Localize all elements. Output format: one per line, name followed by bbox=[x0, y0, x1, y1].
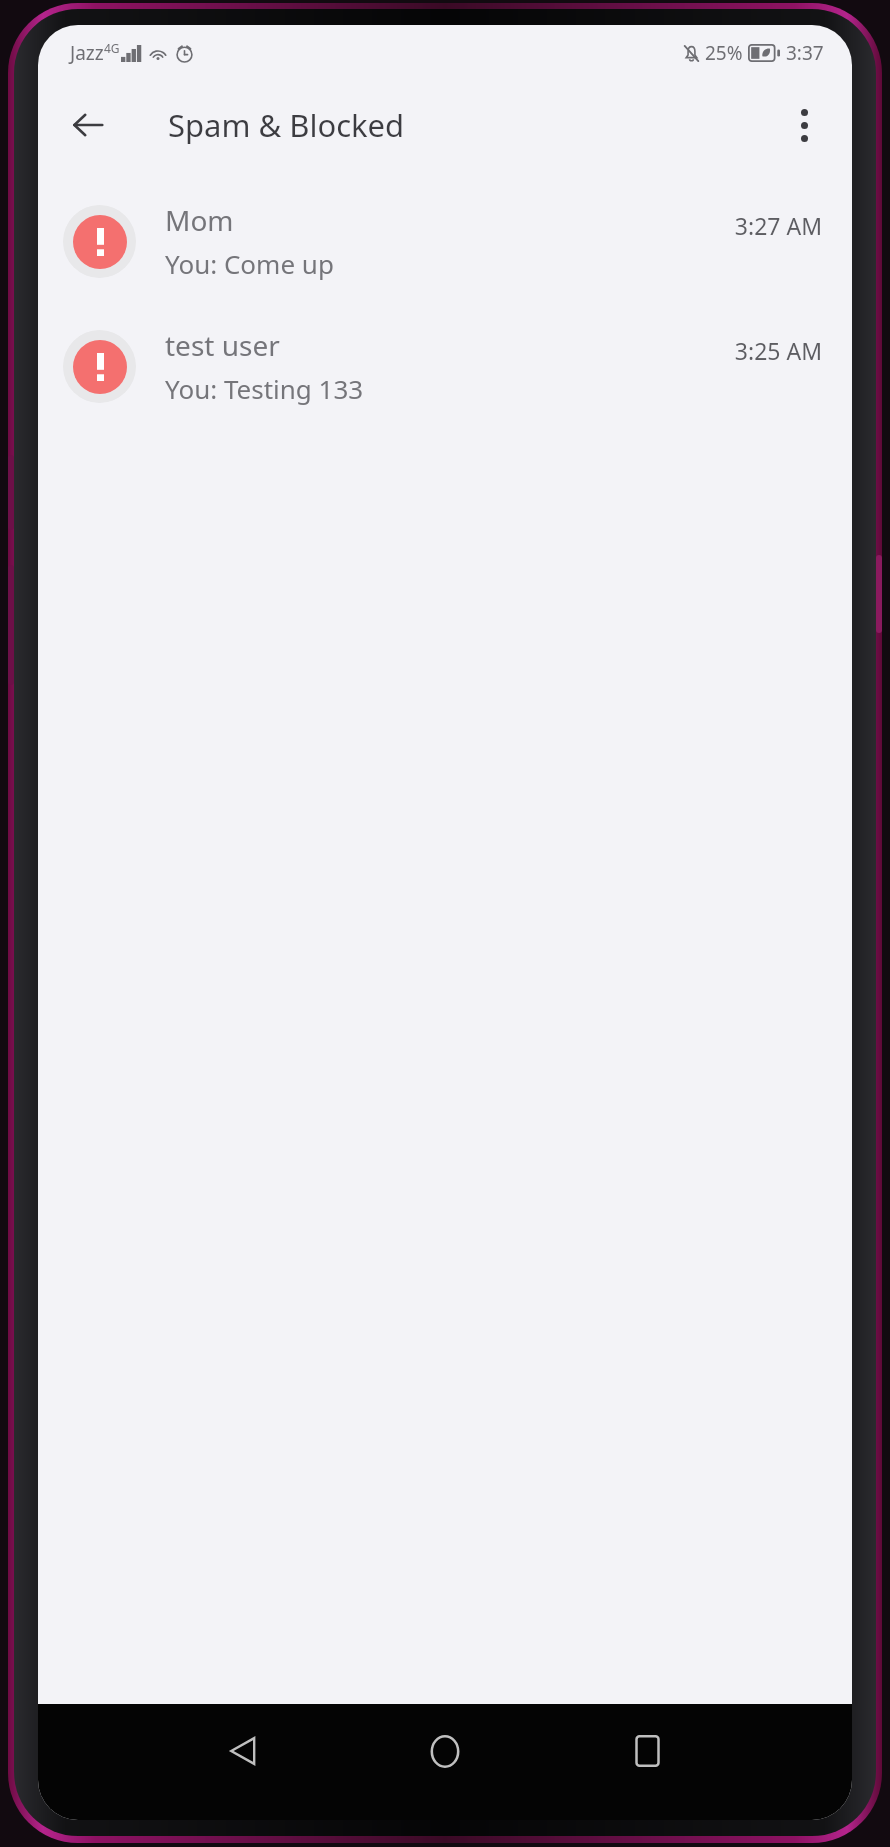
staticText: Mom bbox=[165, 201, 234, 239]
button[interactable]: Mom bbox=[38, 201, 852, 281]
staticText: You: Come up bbox=[165, 246, 334, 281]
staticText: 3:37 bbox=[786, 40, 824, 66]
staticText: 25% bbox=[705, 40, 743, 66]
staticText: Spam & Blocked bbox=[168, 104, 405, 146]
button[interactable]: Back bbox=[212, 1720, 274, 1782]
button[interactable]: test user bbox=[38, 326, 852, 406]
staticText: 3:25 AM bbox=[734, 335, 822, 366]
button[interactable]: More options bbox=[776, 97, 832, 153]
staticText: 4G bbox=[104, 40, 120, 56]
staticText: You: Testing 133 bbox=[165, 371, 364, 406]
button[interactable]: Home bbox=[414, 1720, 476, 1782]
button[interactable]: Back bbox=[60, 97, 116, 153]
staticText: 3:27 AM bbox=[734, 210, 822, 241]
staticText: Jazz bbox=[70, 40, 104, 66]
staticText: test user bbox=[165, 326, 280, 364]
button[interactable]: Recent apps bbox=[616, 1720, 678, 1782]
